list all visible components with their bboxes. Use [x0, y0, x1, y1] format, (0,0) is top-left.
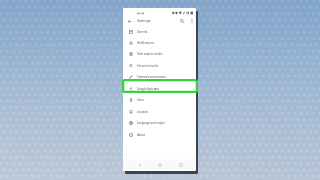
button[interactable]: Back	[125, 17, 133, 25]
staticText: Google Assistant	[137, 87, 160, 91]
staticText: Voice	[137, 98, 144, 102]
button[interactable]: More options	[188, 17, 196, 25]
button[interactable]: Google Assistant	[123, 83, 196, 94]
button[interactable]: Notifications	[123, 37, 196, 48]
button[interactable]: Channels and answers	[123, 71, 196, 82]
staticText: Location	[137, 110, 149, 114]
staticText: Settings	[137, 18, 151, 23]
button[interactable]: Search	[178, 17, 186, 25]
button[interactable]: Back	[135, 160, 144, 169]
button[interactable]: Hide explicit results	[123, 48, 196, 59]
button[interactable]: Recents	[176, 160, 185, 169]
button[interactable]: General	[123, 26, 196, 37]
staticText: Notifications	[137, 41, 154, 45]
button[interactable]: Personal results	[123, 60, 196, 71]
staticText: Hide explicit results	[137, 52, 163, 56]
button[interactable]: Home	[155, 160, 164, 169]
staticText: Personal results	[137, 64, 159, 68]
button[interactable]: Language and region	[123, 117, 196, 128]
staticText: General	[137, 30, 148, 34]
staticText: Language and region	[137, 121, 166, 125]
button[interactable]: About	[123, 129, 196, 140]
button[interactable]: Location	[123, 106, 196, 117]
button[interactable]: Voice	[123, 94, 196, 105]
staticText: About	[137, 133, 145, 137]
staticText: Channels and answers	[137, 75, 167, 79]
